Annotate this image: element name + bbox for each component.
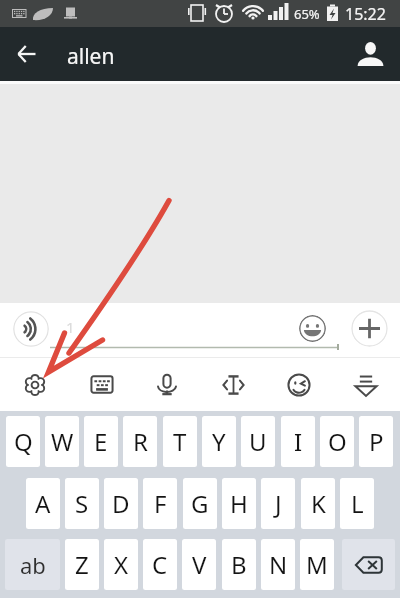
- button[interactable]: M: [300, 539, 334, 590]
- staticText: K: [311, 487, 326, 520]
- staticText: F: [154, 487, 167, 520]
- staticText: H: [230, 487, 248, 520]
- staticText: R: [133, 425, 148, 458]
- staticText: T: [173, 425, 187, 458]
- button[interactable]: W: [45, 416, 79, 467]
- button[interactable]: V: [182, 539, 216, 590]
- button[interactable]: Q: [6, 416, 40, 467]
- button[interactable]: Settings: [0, 358, 66, 411]
- staticText: Y: [212, 425, 226, 458]
- staticText: S: [75, 487, 89, 520]
- button[interactable]: G: [183, 478, 217, 529]
- staticText: I: [294, 425, 303, 458]
- staticText: ab: [20, 550, 46, 580]
- staticText: L: [351, 487, 364, 520]
- staticText: Z: [75, 548, 89, 581]
- button[interactable]: Hide keyboard: [333, 358, 400, 411]
- button[interactable]: Stickers: [266, 358, 333, 411]
- button[interactable]: Voice message: [13, 311, 49, 347]
- staticText: 65%: [294, 5, 320, 23]
- button[interactable]: C: [143, 539, 177, 590]
- button[interactable]: Add attachment: [351, 310, 388, 347]
- button[interactable]: S: [65, 478, 99, 529]
- staticText: P: [369, 425, 384, 458]
- staticText: X: [114, 548, 129, 581]
- staticText: W: [51, 425, 74, 458]
- button[interactable]: D: [104, 478, 138, 529]
- staticText: A: [35, 487, 51, 520]
- staticText: N: [269, 548, 288, 581]
- button[interactable]: E: [84, 416, 118, 467]
- button[interactable]: Y: [202, 416, 236, 467]
- staticText: O: [328, 425, 347, 458]
- staticText: V: [192, 548, 207, 581]
- button[interactable]: R: [123, 416, 157, 467]
- button[interactable]: P: [359, 416, 393, 467]
- staticText: 1: [66, 317, 75, 337]
- staticText: D: [112, 487, 130, 520]
- button[interactable]: Emoji: [299, 315, 326, 342]
- staticText: J: [275, 487, 282, 520]
- button[interactable]: U: [241, 416, 275, 467]
- button[interactable]: A: [26, 478, 60, 529]
- staticText: 15:22: [345, 3, 386, 25]
- button[interactable]: K: [301, 478, 335, 529]
- button[interactable]: B: [222, 539, 256, 590]
- button[interactable]: Z: [65, 539, 99, 590]
- button[interactable]: F: [143, 478, 177, 529]
- button[interactable]: J: [261, 478, 295, 529]
- button[interactable]: H: [222, 478, 256, 529]
- staticText: C: [152, 548, 168, 581]
- staticText: U: [249, 425, 267, 458]
- staticText: B: [231, 548, 247, 581]
- button[interactable]: I: [281, 416, 315, 467]
- button[interactable]: T: [163, 416, 197, 467]
- button[interactable]: Contact profile: [348, 32, 392, 76]
- button[interactable]: Keyboard: [66, 358, 132, 411]
- button[interactable]: ab: [5, 539, 60, 590]
- button[interactable]: Text format: [199, 358, 266, 411]
- staticText: Q: [14, 425, 33, 458]
- staticText: allen: [67, 42, 115, 71]
- button[interactable]: O: [320, 416, 354, 467]
- button[interactable]: Voice input: [132, 358, 199, 411]
- button[interactable]: X: [104, 539, 138, 590]
- staticText: M: [306, 548, 328, 581]
- staticText: E: [94, 425, 108, 458]
- button[interactable]: L: [340, 478, 374, 529]
- button[interactable]: Backspace: [342, 539, 395, 590]
- button[interactable]: N: [261, 539, 295, 590]
- staticText: G: [191, 487, 209, 520]
- button[interactable]: Back: [4, 32, 48, 76]
